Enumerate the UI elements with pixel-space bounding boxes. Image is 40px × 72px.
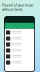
staticText: without limits (2, 8, 22, 11)
staticText: Play all of your music (2, 4, 33, 7)
